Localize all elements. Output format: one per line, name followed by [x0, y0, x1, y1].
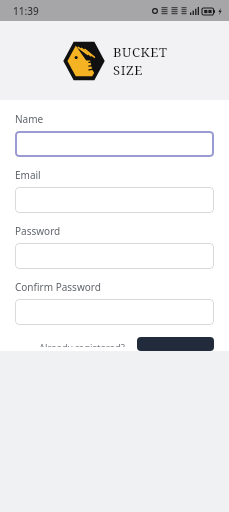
button[interactable]: Password: [15, 243, 214, 269]
staticText: Confirm Password: [15, 280, 101, 294]
staticText: SIZE: [113, 61, 144, 79]
staticText: 11:39: [13, 4, 39, 18]
button[interactable]: REGISTER: [137, 337, 214, 351]
button[interactable]: Confirm Password: [15, 299, 214, 325]
staticText: Password: [15, 224, 61, 238]
staticText: Already registered?: [39, 341, 125, 347]
button[interactable]: Name: [15, 131, 214, 157]
staticText: Email: [15, 168, 41, 182]
button[interactable]: Email: [15, 187, 214, 213]
button[interactable]: Already registered?: [37, 337, 127, 351]
staticText: BUCKET: [113, 43, 168, 61]
staticText: Name: [15, 112, 44, 126]
